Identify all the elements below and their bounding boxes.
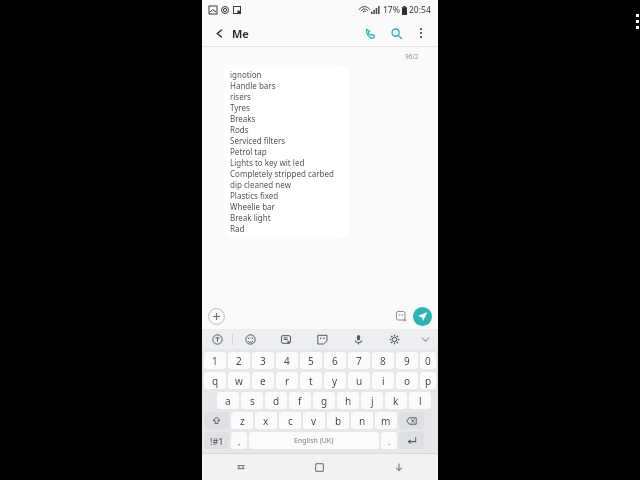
- staticText: 2: [236, 354, 242, 368]
- button[interactable]: k: [385, 392, 407, 409]
- staticText: Break light: [230, 212, 271, 223]
- button[interactable]: 7: [348, 352, 370, 369]
- staticText: dip cleaned new: [230, 179, 291, 190]
- staticText: q: [212, 374, 219, 388]
- staticText: English (UK): [294, 436, 334, 446]
- staticText: Completely stripped carbed: [230, 168, 334, 179]
- button[interactable]: 8: [372, 352, 394, 369]
- button[interactable]: 1: [204, 352, 226, 369]
- staticText: y: [332, 374, 338, 388]
- button[interactable]: m: [375, 412, 397, 429]
- staticText: l: [419, 394, 422, 408]
- staticText: j: [371, 394, 374, 408]
- button[interactable]: 9: [396, 352, 418, 369]
- staticText: b: [335, 414, 342, 428]
- staticText: w: [235, 374, 243, 388]
- button[interactable]: o: [396, 372, 418, 389]
- button[interactable]: English (UK): [249, 432, 379, 449]
- staticText: f: [298, 394, 302, 408]
- button[interactable]: Voice input: [340, 329, 376, 349]
- staticText: h: [345, 394, 352, 408]
- button[interactable]: 5: [300, 352, 322, 369]
- button[interactable]: j: [361, 392, 383, 409]
- staticText: Tyres: [230, 102, 250, 113]
- button[interactable]: GIF: [268, 329, 304, 349]
- button[interactable]: Send: [413, 307, 432, 326]
- button[interactable]: .: [381, 432, 397, 449]
- button[interactable]: Sticker: [394, 309, 408, 323]
- button[interactable]: s: [241, 392, 263, 409]
- button[interactable]: i: [372, 372, 394, 389]
- staticText: Me: [232, 26, 249, 41]
- staticText: e: [260, 374, 266, 388]
- staticText: risers: [230, 91, 251, 102]
- button[interactable]: p: [420, 372, 436, 389]
- button[interactable]: Back: [210, 24, 228, 42]
- button[interactable]: t: [300, 372, 322, 389]
- button[interactable]: w: [228, 372, 250, 389]
- button[interactable]: n: [351, 412, 373, 429]
- staticText: 9: [404, 354, 410, 368]
- button[interactable]: Search: [386, 23, 406, 43]
- button[interactable]: Back: [359, 454, 438, 480]
- button[interactable]: 2: [228, 352, 250, 369]
- button[interactable]: 0: [420, 352, 436, 369]
- button[interactable]: u: [348, 372, 370, 389]
- staticText: 5: [308, 354, 314, 368]
- button[interactable]: Collapse keyboard: [412, 329, 438, 349]
- staticText: 96/2: [405, 52, 419, 61]
- button[interactable]: r: [276, 372, 298, 389]
- staticText: i: [382, 374, 385, 388]
- button[interactable]: v: [303, 412, 325, 429]
- staticText: 20:54: [409, 4, 431, 16]
- button[interactable]: e: [252, 372, 274, 389]
- button[interactable]: g: [313, 392, 335, 409]
- button[interactable]: h: [337, 392, 359, 409]
- button[interactable]: Emoji: [233, 329, 268, 349]
- button[interactable]: a: [217, 392, 239, 409]
- staticText: r: [285, 374, 290, 388]
- button[interactable]: More options: [412, 24, 430, 42]
- staticText: Lights to key wit led: [230, 157, 305, 168]
- staticText: v: [311, 414, 317, 428]
- button[interactable]: Recents: [202, 454, 280, 480]
- button[interactable]: ignotion: [224, 65, 349, 239]
- button[interactable]: y: [324, 372, 346, 389]
- button[interactable]: Sticker: [304, 329, 340, 349]
- button[interactable]: ,: [231, 432, 247, 449]
- button[interactable]: 4: [276, 352, 298, 369]
- button[interactable]: Translate: [202, 329, 232, 349]
- staticText: z: [240, 414, 245, 428]
- button[interactable]: z: [231, 412, 253, 429]
- button[interactable]: c: [279, 412, 301, 429]
- staticText: 8: [380, 354, 386, 368]
- button[interactable]: d: [265, 392, 287, 409]
- staticText: a: [225, 394, 231, 408]
- button[interactable]: f: [289, 392, 311, 409]
- button[interactable]: 3: [252, 352, 274, 369]
- button[interactable]: x: [255, 412, 277, 429]
- button[interactable]: Shift: [204, 412, 229, 429]
- button[interactable]: Home: [280, 454, 359, 480]
- staticText: 1: [212, 354, 218, 368]
- button[interactable]: Add attachment: [208, 308, 225, 325]
- staticText: Plastics fixed: [230, 190, 279, 201]
- staticText: n: [359, 414, 366, 428]
- button[interactable]: Enter: [399, 432, 424, 449]
- button[interactable]: Settings: [376, 329, 412, 349]
- button[interactable]: Backspace: [399, 412, 424, 429]
- staticText: Wheelie bar: [230, 201, 275, 212]
- button[interactable]: !#1: [204, 432, 229, 449]
- button[interactable]: 6: [324, 352, 346, 369]
- staticText: o: [404, 374, 411, 388]
- staticText: d: [273, 394, 280, 408]
- button[interactable]: b: [327, 412, 349, 429]
- staticText: Rods: [230, 124, 249, 135]
- staticText: t: [309, 374, 313, 388]
- button[interactable]: q: [204, 372, 226, 389]
- button[interactable]: Call: [360, 23, 380, 43]
- staticText: g: [321, 394, 328, 408]
- button[interactable]: l: [409, 392, 431, 409]
- staticText: 0: [425, 354, 431, 368]
- staticText: p: [425, 374, 432, 388]
